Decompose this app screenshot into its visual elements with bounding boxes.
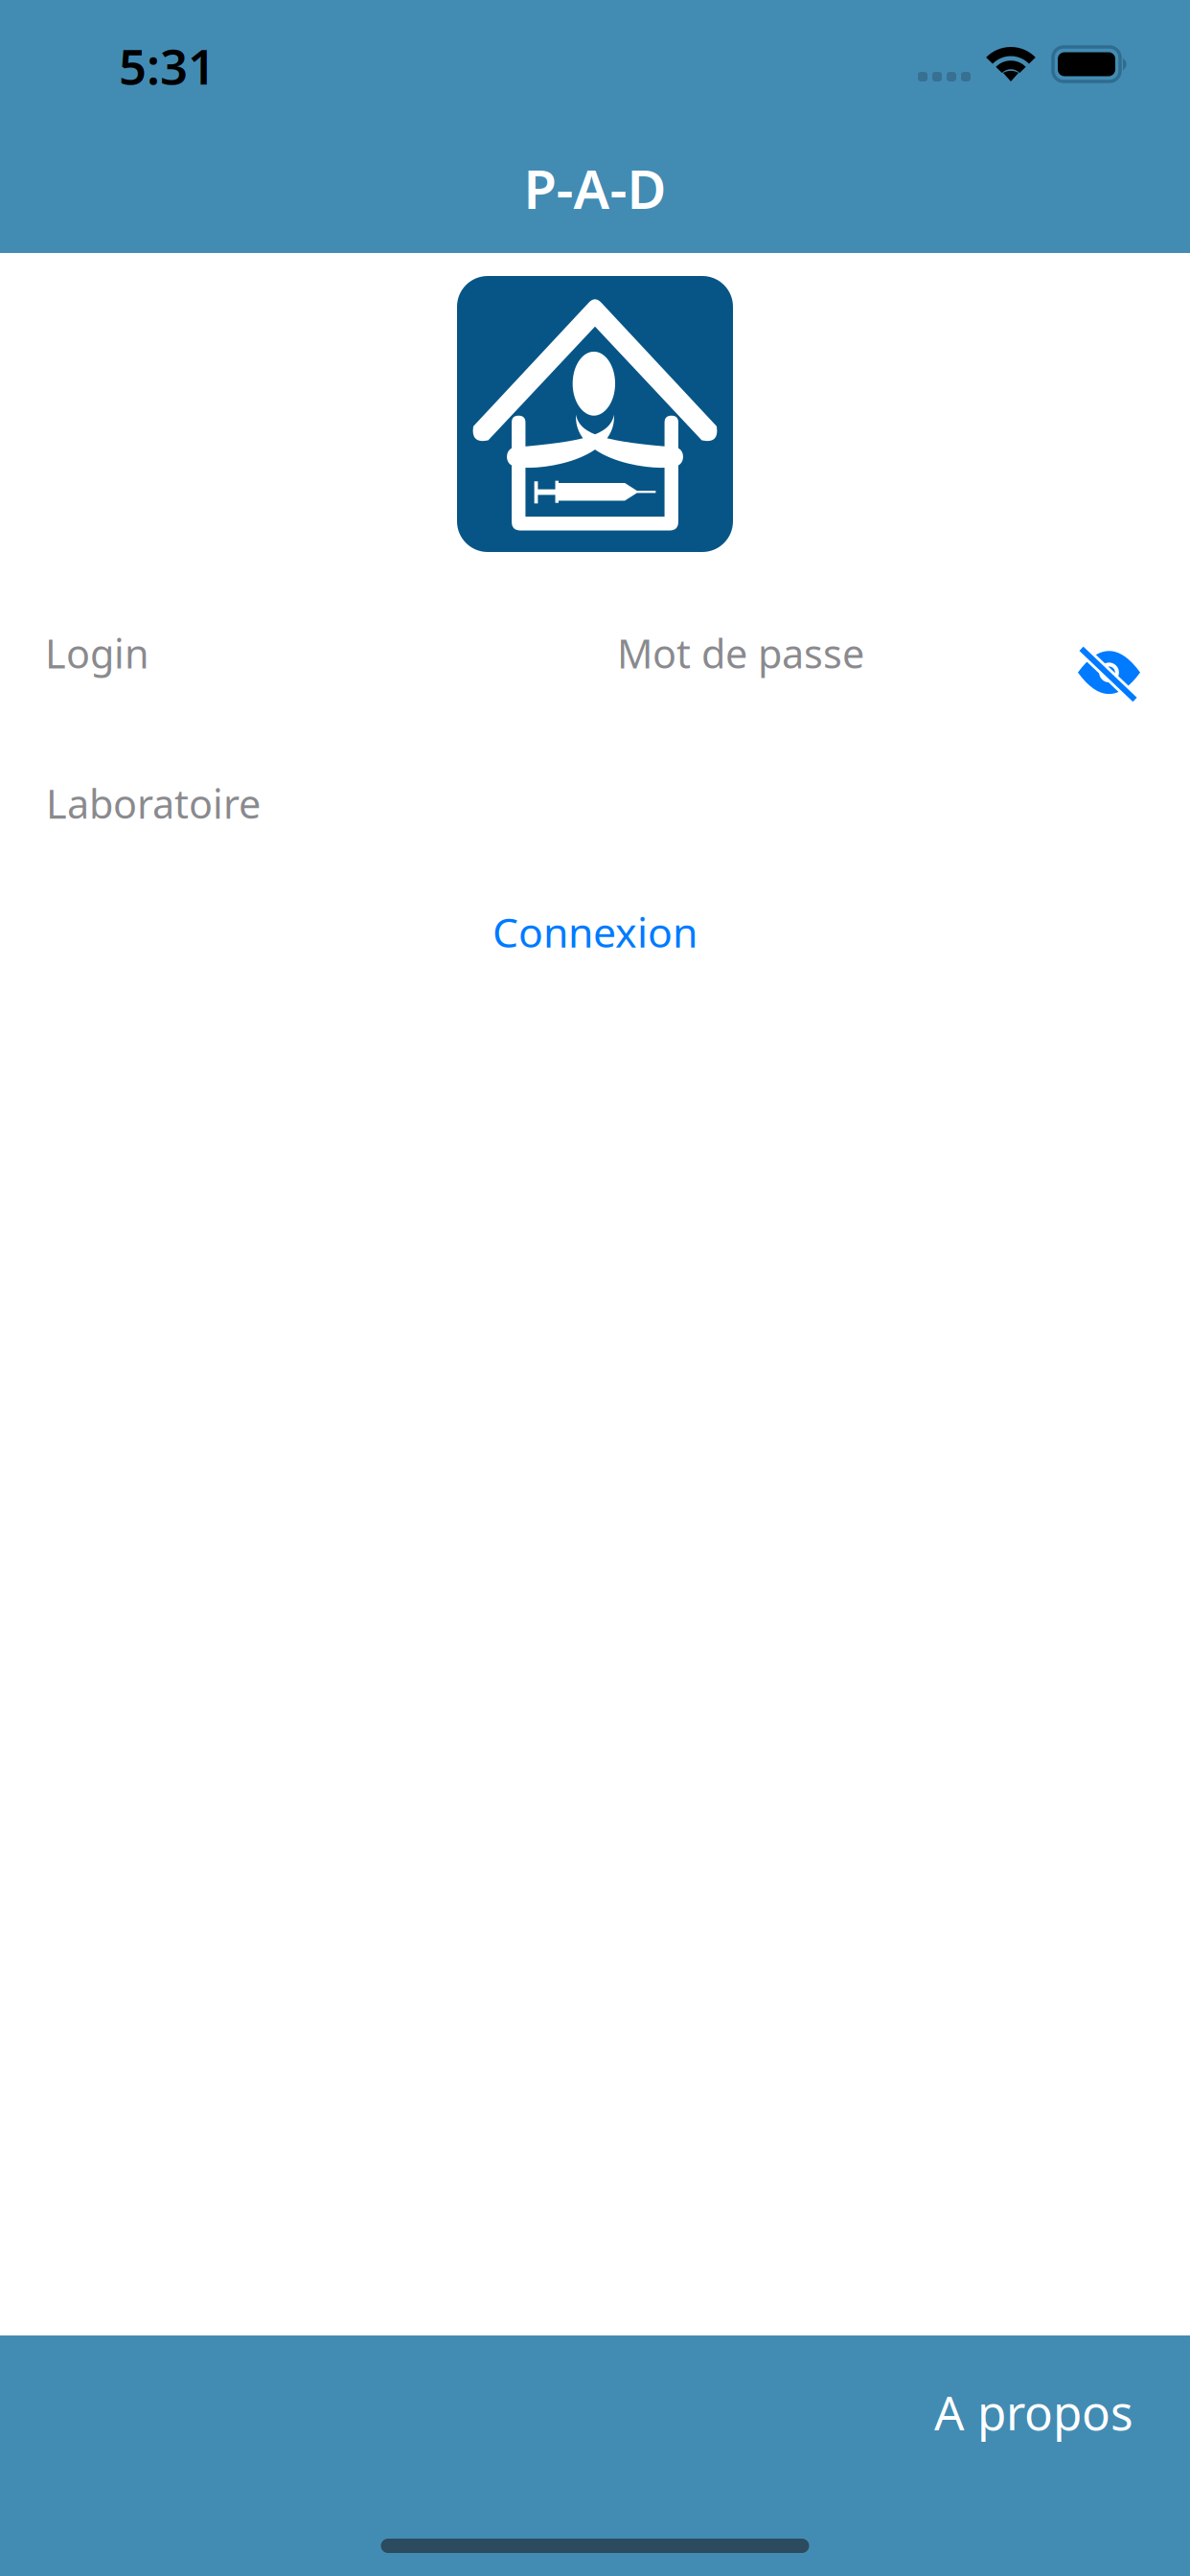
staticText: Laboratoire <box>46 777 261 830</box>
staticText: Login <box>45 627 149 679</box>
staticText: 5:31 <box>119 34 216 98</box>
button[interactable]: Afficher le mot de passe <box>1055 600 1163 706</box>
staticText: A propos <box>934 2380 1133 2443</box>
button[interactable]: A propos <box>917 2363 1151 2461</box>
button[interactable]: Connexion <box>0 904 1190 959</box>
staticText: Mot de passe <box>617 627 864 679</box>
staticText: Connexion <box>492 904 698 959</box>
staticText: P-A-D <box>524 152 666 224</box>
